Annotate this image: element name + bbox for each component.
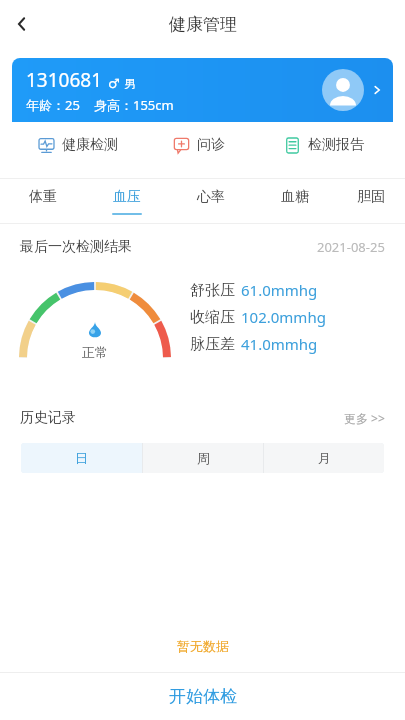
- button[interactable]: 1310681: [12, 58, 393, 122]
- staticText: 暂无数据: [177, 638, 229, 654]
- staticText: 体重: [29, 188, 57, 206]
- button[interactable]: 开始体检: [0, 673, 405, 720]
- staticText: 血压: [113, 188, 141, 206]
- staticText: 脉压差: [190, 335, 235, 354]
- staticText: 周: [197, 450, 210, 466]
- staticText: 健康检测: [62, 136, 118, 154]
- button[interactable]: 更多 >>: [344, 410, 385, 426]
- staticText: 问诊: [197, 136, 225, 154]
- staticText: 61.0mmhg: [241, 280, 318, 300]
- other: Profile detail: [371, 84, 383, 96]
- staticText: 更多 >>: [344, 410, 385, 426]
- staticText: 年龄：25: [26, 96, 80, 114]
- staticText: 日: [75, 450, 88, 466]
- staticText: 收缩压: [190, 308, 235, 327]
- button[interactable]: 周: [143, 443, 263, 473]
- staticText: 心率: [197, 188, 225, 206]
- button[interactable]: 胆固: [337, 179, 405, 223]
- button[interactable]: 健康检测: [12, 122, 143, 168]
- button[interactable]: 月: [264, 443, 384, 473]
- staticText: 历史记录: [20, 409, 76, 427]
- staticText: 102.0mmhg: [241, 307, 326, 327]
- button[interactable]: 体重: [0, 179, 85, 223]
- staticText: 舒张压: [190, 281, 235, 300]
- staticText: 男: [124, 76, 136, 91]
- staticText: 血糖: [281, 188, 309, 206]
- staticText: 健康管理: [169, 14, 237, 35]
- staticText: 胆固: [357, 188, 385, 206]
- staticText: 最后一次检测结果: [20, 238, 132, 256]
- staticText: 正常: [82, 344, 108, 360]
- staticText: 月: [318, 450, 331, 466]
- button[interactable]: Back: [0, 2, 44, 46]
- button[interactable]: 血糖: [253, 179, 337, 223]
- button[interactable]: 血压: [85, 179, 169, 223]
- staticText: ♂: [108, 76, 120, 91]
- button[interactable]: 日: [21, 443, 142, 473]
- staticText: 41.0mmhg: [241, 334, 318, 354]
- staticText: 检测报告: [308, 136, 364, 154]
- staticText: 开始体检: [169, 686, 237, 707]
- button[interactable]: 心率: [169, 179, 253, 223]
- button[interactable]: 检测报告: [255, 122, 393, 168]
- staticText: 2021-08-25: [317, 238, 385, 256]
- staticText: 身高：155cm: [94, 96, 174, 114]
- staticText: 1310681: [26, 67, 103, 93]
- button[interactable]: 问诊: [143, 122, 255, 168]
